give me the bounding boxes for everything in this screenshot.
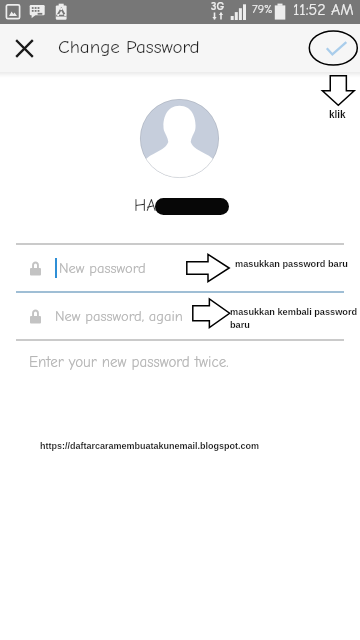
staticText: masukkan kembali password baru: [230, 307, 358, 330]
button[interactable]: Close: [8, 32, 40, 64]
staticText: New password: [59, 260, 146, 277]
staticText: Enter your new password twice.: [29, 353, 229, 370]
staticText: 79%: [252, 2, 273, 16]
staticText: https://daftarcaramembuatakunemail.blogs…: [40, 441, 260, 451]
staticText: 3G: [211, 0, 225, 13]
staticText: HA: [134, 196, 157, 216]
button[interactable]: Confirm: [316, 26, 350, 70]
staticText: 11:52 AM: [293, 1, 354, 19]
staticText: Change Password: [58, 36, 200, 58]
button[interactable]: New password: [0, 244, 360, 291]
staticText: masukkan password baru: [235, 259, 348, 269]
button[interactable]: New password, again: [0, 292, 360, 339]
staticText: klik: [329, 109, 346, 120]
staticText: New password, again: [55, 308, 183, 325]
